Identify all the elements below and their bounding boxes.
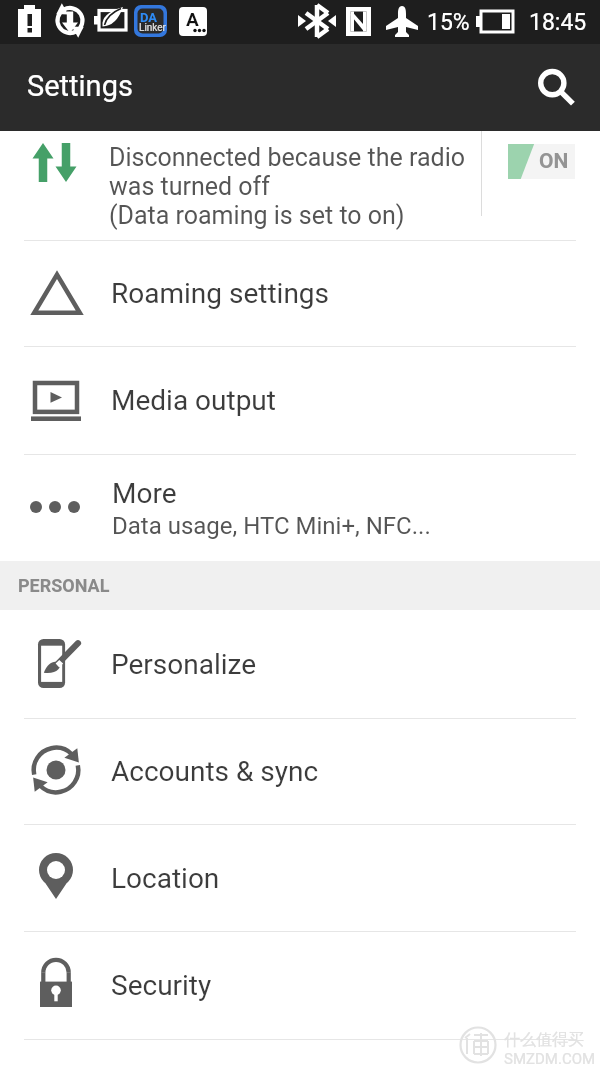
button[interactable]: Media output (0, 347, 600, 454)
button[interactable]: Roaming settings (0, 241, 600, 346)
staticText: Data usage, HTC Mini+, NFC... (112, 512, 431, 540)
button[interactable]: Personalize (0, 610, 600, 718)
staticText: Linker (139, 22, 167, 34)
staticText: SMZDM.COM (504, 1050, 596, 1067)
button[interactable]: More (0, 455, 600, 561)
staticText: DA (140, 10, 158, 25)
staticText: ON (539, 149, 569, 174)
button[interactable]: Accounts & sync (0, 719, 600, 824)
staticText: Personalize (111, 648, 257, 681)
button[interactable]: Security (0, 932, 600, 1039)
staticText: Accounts & sync (111, 755, 319, 788)
button[interactable]: Disconnected because the radio was turne… (0, 131, 600, 240)
staticText: 什么值得买 (504, 1030, 584, 1050)
button[interactable]: ON (508, 144, 575, 179)
staticText: 18:45 (529, 9, 587, 36)
staticText: Settings (27, 69, 133, 103)
button[interactable]: Location (0, 825, 600, 931)
staticText: Location (111, 862, 220, 895)
staticText: Disconnected because the radio was turne… (109, 143, 465, 230)
staticText: PERSONAL (18, 575, 110, 596)
button[interactable]: Search (510, 44, 600, 131)
staticText: More (112, 477, 177, 510)
staticText: 15% (427, 9, 470, 36)
staticText: Media output (111, 384, 276, 417)
staticText: A (186, 8, 199, 30)
staticText: Roaming settings (111, 277, 330, 310)
staticText: Security (111, 969, 212, 1002)
